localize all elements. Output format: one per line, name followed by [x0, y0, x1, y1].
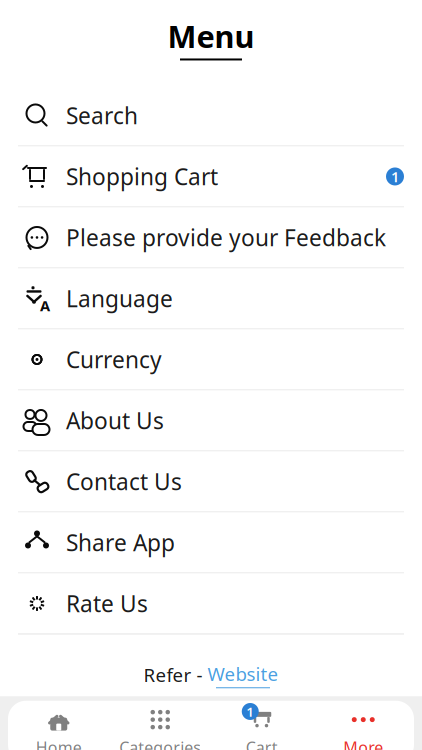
- button[interactable]: Refer -: [143, 634, 278, 688]
- button[interactable]: A: [0, 268, 422, 328]
- staticText: Rate Us: [66, 588, 148, 618]
- staticText: 1: [391, 167, 399, 186]
- staticText: Language: [66, 283, 173, 313]
- staticText: Categories: [119, 737, 201, 750]
- button[interactable]: Please provide your Feedback: [0, 207, 422, 267]
- staticText: Shopping Cart: [66, 161, 218, 191]
- button[interactable]: Shopping Cart: [0, 146, 422, 206]
- staticText: Refer -: [143, 662, 207, 687]
- staticText: Search: [66, 100, 138, 130]
- staticText: Contact Us: [66, 466, 182, 496]
- staticText: Home: [36, 737, 82, 750]
- staticText: A: [40, 296, 50, 315]
- button[interactable]: Currency: [0, 329, 422, 389]
- staticText: Website: [207, 661, 278, 686]
- staticText: About Us: [66, 405, 164, 435]
- staticText: Menu: [167, 16, 254, 56]
- staticText: Share App: [66, 527, 175, 557]
- button[interactable]: Contact Us: [0, 451, 422, 511]
- button[interactable]: Share App: [0, 512, 422, 572]
- staticText: Please provide your Feedback: [66, 222, 386, 252]
- button[interactable]: Home: [8, 701, 109, 750]
- staticText: More: [343, 737, 383, 750]
- button[interactable]: More: [312, 701, 414, 750]
- button[interactable]: About Us: [0, 390, 422, 450]
- button[interactable]: Search: [0, 85, 422, 145]
- staticText: Currency: [66, 344, 162, 374]
- staticText: 1: [246, 703, 254, 720]
- button[interactable]: Rate Us: [0, 573, 422, 633]
- button[interactable]: 1: [211, 701, 312, 750]
- button[interactable]: Categories: [109, 701, 211, 750]
- staticText: Cart: [246, 737, 278, 750]
